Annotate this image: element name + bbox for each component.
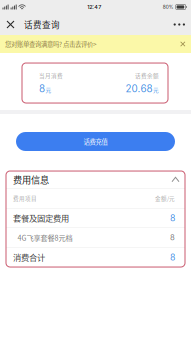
staticText: 8 — [39, 83, 45, 94]
button[interactable]: 套餐及固定费用 — [6, 208, 185, 227]
staticText: 元 — [45, 86, 51, 94]
button[interactable]: More options — [168, 15, 191, 34]
staticText: 话费充值 — [83, 137, 107, 146]
button[interactable]: 消费合计 — [6, 247, 185, 267]
staticText: 费用信息 — [13, 173, 49, 186]
staticText: 费用项目 — [13, 194, 37, 202]
staticText: 8 — [170, 213, 175, 223]
staticText: 金额/元 — [155, 194, 175, 202]
button[interactable]: 4G飞享套餐8元档 — [6, 228, 185, 247]
staticText: 80% — [163, 4, 174, 10]
staticText: 20.68 — [125, 83, 152, 94]
staticText: 当月消费 — [39, 71, 63, 80]
staticText: 12:47 — [87, 4, 101, 10]
button[interactable]: 费用信息 — [6, 171, 185, 188]
button[interactable]: Close — [0, 14, 24, 35]
staticText: 话费余额 — [135, 71, 159, 80]
button[interactable]: 话费充值 — [0, 132, 191, 151]
staticText: 话费查询 — [24, 18, 60, 31]
staticText: 8 — [170, 252, 175, 262]
staticText: 4G飞享套餐8元档 — [17, 232, 72, 243]
button[interactable]: 您对账单查询满意吗? 点击去评价> — [0, 35, 191, 53]
staticText: 消费合计 — [13, 251, 45, 263]
staticText: 套餐及固定费用 — [13, 212, 69, 224]
staticText: 8 — [170, 233, 175, 242]
staticText: 元 — [153, 86, 159, 94]
staticText: 您对账单查询满意吗? 点击去评价> — [5, 39, 97, 49]
